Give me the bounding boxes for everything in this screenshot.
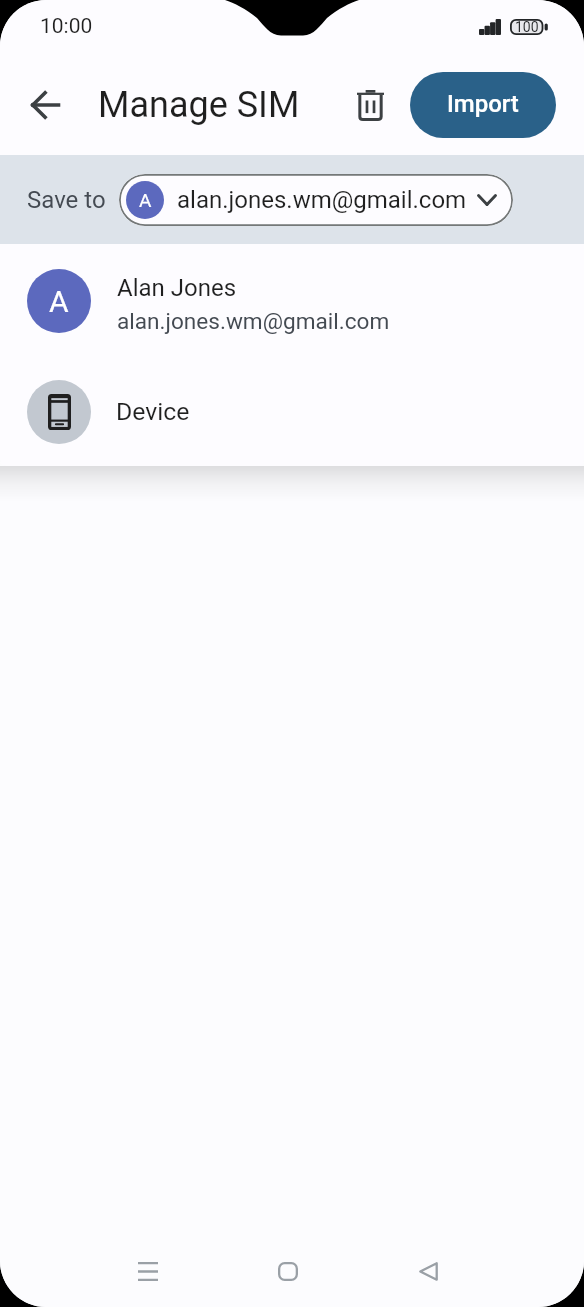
staticText: Alan Jones [117, 274, 237, 302]
staticText: 10:00 [40, 14, 93, 39]
button[interactable]: A [119, 174, 513, 226]
button[interactable]: Back [398, 1241, 458, 1301]
button[interactable]: Back [17, 77, 73, 133]
staticText: alan.jones.wm@gmail.com [117, 308, 390, 334]
staticText: alan.jones.wm@gmail.com [177, 186, 467, 214]
button[interactable]: Import [410, 72, 556, 138]
staticText: 100 [515, 19, 539, 35]
staticText: A [49, 284, 69, 319]
staticText: Manage SIM [98, 84, 300, 126]
button[interactable]: Device [0, 358, 584, 466]
button[interactable]: Recent apps [118, 1241, 178, 1301]
staticText: Import [447, 90, 519, 118]
staticText: A [139, 189, 152, 211]
button[interactable]: A [0, 244, 584, 358]
button[interactable]: Delete [342, 77, 398, 133]
staticText: Device [116, 397, 190, 426]
button[interactable]: Home [258, 1241, 318, 1301]
staticText: Save to [27, 186, 106, 214]
